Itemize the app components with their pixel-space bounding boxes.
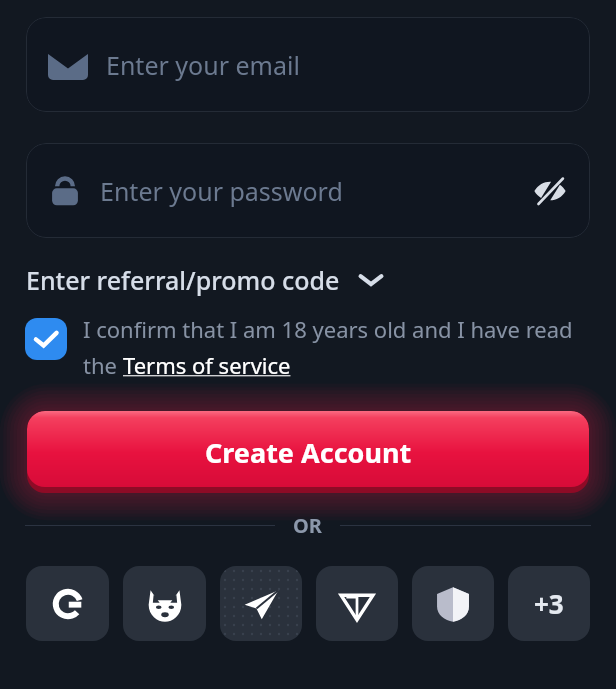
button[interactable]: Enter your password xyxy=(26,143,590,238)
button[interactable]: Enter referral/promo code xyxy=(26,259,384,301)
button[interactable]: Sign in with wallet xyxy=(412,566,494,641)
staticText: the xyxy=(83,350,123,380)
button[interactable]: Show password xyxy=(528,169,572,213)
staticText: +3 xyxy=(534,586,564,621)
button[interactable]: Terms of service xyxy=(123,350,291,380)
staticText: OR xyxy=(293,512,322,539)
staticText: I confirm that I am 18 years old and I h… xyxy=(83,314,573,344)
button[interactable]: Enter your email xyxy=(26,17,590,112)
button[interactable]: Create Account xyxy=(27,411,589,493)
button[interactable]: I confirm that I am 18 years old and I h… xyxy=(25,314,591,380)
staticText: Enter your email xyxy=(106,48,300,82)
staticText: Create Account xyxy=(205,434,412,471)
button[interactable]: Sign in with Telegram xyxy=(220,566,302,641)
button[interactable]: Sign in with Google xyxy=(26,566,109,641)
button[interactable]: Sign in with MetaMask xyxy=(123,566,206,641)
button[interactable]: Sign in with TON xyxy=(316,566,398,641)
staticText: Enter your password xyxy=(100,174,343,208)
button[interactable]: Show 3 more sign-in options xyxy=(508,566,590,641)
staticText: Enter referral/promo code xyxy=(26,263,340,297)
staticText: Terms of service xyxy=(123,350,291,380)
